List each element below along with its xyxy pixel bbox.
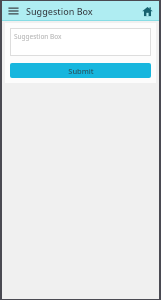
staticText: Suggestion Box [14, 32, 62, 41]
button[interactable]: Submit [10, 63, 151, 78]
staticText: Submit [68, 66, 94, 76]
button[interactable]: Open navigation menu [5, 3, 21, 19]
button[interactable]: Home [139, 3, 155, 19]
staticText: Suggestion Box [26, 5, 93, 17]
button[interactable]: Suggestion Box [10, 28, 151, 56]
